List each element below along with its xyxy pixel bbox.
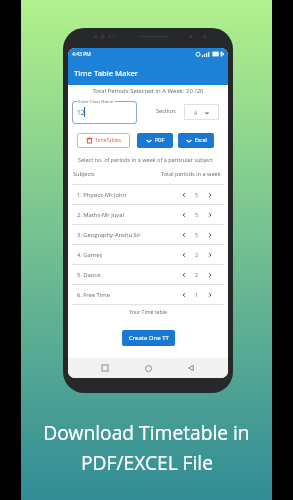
staticText: Download Timetable in <box>43 419 250 445</box>
button[interactable]: Decrease periods <box>181 272 187 278</box>
button[interactable]: Home <box>145 365 152 372</box>
button[interactable]: Decrease periods <box>181 192 187 198</box>
button[interactable]: Decrease periods <box>181 212 187 218</box>
staticText: PDF <box>155 137 165 144</box>
button[interactable]: 4. Games <box>68 245 228 265</box>
staticText: A <box>194 109 198 116</box>
staticText: 2 <box>195 271 199 278</box>
button[interactable]: Increase periods <box>207 272 213 278</box>
staticText: TimeTables <box>95 137 122 144</box>
staticText: Time Table Maker <box>74 68 138 79</box>
staticText: 2. Maths-Mr Juyal <box>77 211 124 219</box>
button[interactable]: Excel <box>178 133 214 148</box>
staticText: 1. Physics-Mr John <box>77 191 127 199</box>
button[interactable]: Increase periods <box>207 292 213 298</box>
staticText: 5 <box>195 231 199 238</box>
staticText: Excel <box>195 137 207 144</box>
staticText: Create One TT <box>129 334 169 342</box>
staticText: PDF/EXCEL File <box>81 449 213 475</box>
staticText: 5 <box>195 191 199 198</box>
staticText: 5. Dance <box>77 271 101 279</box>
staticText: Total Periods Selected In A Week: 20 /20 <box>68 87 228 95</box>
staticText: Enter Class Name <box>78 98 114 104</box>
staticText: 5 <box>195 211 199 218</box>
staticText: 4:43 PM <box>72 51 91 58</box>
staticText: 1 <box>195 291 199 298</box>
button[interactable]: 2. Maths-Mr Juyal <box>68 205 228 225</box>
button[interactable]: Create One TT <box>122 330 175 346</box>
staticText: Section: <box>156 107 177 115</box>
staticText: Total periods in a week <box>161 170 221 178</box>
button[interactable]: 3. Geography-Anshu Sir <box>68 225 228 245</box>
staticText: 4. Games <box>77 251 103 259</box>
button[interactable]: Decrease periods <box>181 292 187 298</box>
staticText: 3. Geography-Anshu Sir <box>77 231 141 239</box>
button[interactable]: 1. Physics-Mr John <box>68 185 228 205</box>
staticText: 12 <box>77 108 85 117</box>
button[interactable]: Increase periods <box>207 212 213 218</box>
button[interactable]: Increase periods <box>207 192 213 198</box>
staticText: Your Time table <box>68 308 228 315</box>
button[interactable]: TimeTables <box>77 133 130 148</box>
button[interactable]: Recents <box>102 365 108 371</box>
staticText: 2 <box>195 251 199 258</box>
button[interactable]: PDF <box>137 133 173 148</box>
staticText: Select no. of periods in a week of a par… <box>78 156 213 163</box>
button[interactable]: Increase periods <box>207 232 213 238</box>
staticText: 6. Free Time <box>77 291 110 299</box>
button[interactable]: 5. Dance <box>68 265 228 285</box>
button[interactable]: Increase periods <box>207 252 213 258</box>
button[interactable]: Decrease periods <box>181 232 187 238</box>
button[interactable]: Decrease periods <box>181 252 187 258</box>
staticText: Subjects <box>73 170 95 178</box>
button[interactable]: Back <box>188 365 194 371</box>
button[interactable]: 6. Free Time <box>68 285 228 305</box>
